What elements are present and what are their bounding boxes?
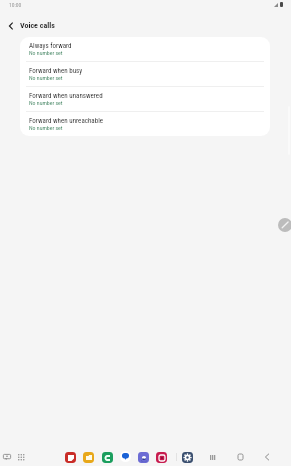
- button[interactable]: Forward when busy: [20, 62, 270, 86]
- staticText: Forward when busy: [29, 67, 83, 75]
- button[interactable]: Messages: [120, 451, 131, 462]
- button[interactable]: Recents: [207, 451, 219, 463]
- button[interactable]: Internet: [138, 452, 149, 463]
- button[interactable]: Navigate up: [3, 18, 19, 34]
- staticText: No number set: [29, 100, 63, 107]
- button[interactable]: Always forward: [20, 37, 270, 61]
- staticText: Forward when unanswered: [29, 92, 103, 100]
- button[interactable]: Notifications: [1, 451, 12, 462]
- button[interactable]: Back: [261, 451, 273, 463]
- staticText: Always forward: [29, 42, 72, 50]
- button[interactable]: Settings: [182, 452, 193, 463]
- button[interactable]: Edge panel handle: [278, 218, 291, 232]
- button[interactable]: Apps: [15, 451, 26, 462]
- button[interactable]: My Files: [83, 452, 94, 463]
- button[interactable]: Phone: [102, 452, 113, 463]
- staticText: No number set: [29, 75, 63, 82]
- staticText: No number set: [29, 125, 63, 132]
- button[interactable]: Notes: [65, 452, 76, 463]
- staticText: Voice calls: [20, 21, 55, 30]
- staticText: No number set: [29, 50, 63, 57]
- button[interactable]: Forward when unanswered: [20, 87, 270, 111]
- staticText: Forward when unreachable: [29, 117, 104, 125]
- staticText: 10:00: [9, 2, 22, 9]
- button[interactable]: Home: [234, 451, 246, 463]
- button[interactable]: Instagram: [156, 452, 167, 463]
- button[interactable]: Forward when unreachable: [20, 112, 270, 136]
